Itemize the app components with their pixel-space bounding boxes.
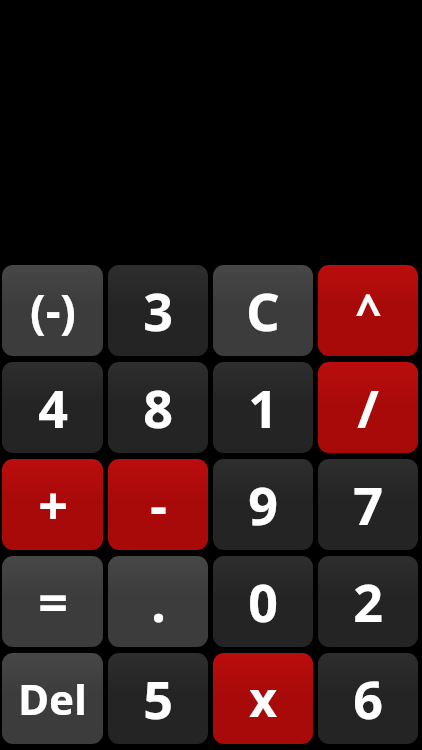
staticText: 9 bbox=[248, 469, 278, 540]
staticText: 1 bbox=[248, 372, 278, 443]
button[interactable]: C bbox=[213, 265, 313, 356]
staticText: = bbox=[38, 566, 68, 637]
staticText: ^ bbox=[355, 279, 382, 342]
button[interactable]: 0 bbox=[213, 556, 313, 647]
button[interactable]: / bbox=[318, 362, 418, 453]
staticText: 4 bbox=[38, 372, 68, 443]
staticText: 0 bbox=[248, 566, 278, 637]
button[interactable]: 9 bbox=[213, 459, 313, 550]
button[interactable]: 1 bbox=[213, 362, 313, 453]
staticText: C bbox=[246, 275, 280, 346]
button[interactable]: ^ bbox=[318, 265, 418, 356]
button[interactable]: 7 bbox=[318, 459, 418, 550]
staticText: - bbox=[150, 469, 167, 540]
staticText: 3 bbox=[143, 275, 173, 346]
button[interactable]: 5 bbox=[108, 653, 208, 744]
button[interactable]: 2 bbox=[318, 556, 418, 647]
button[interactable]: Del bbox=[2, 653, 103, 744]
button[interactable]: 8 bbox=[108, 362, 208, 453]
staticText: x bbox=[249, 666, 277, 731]
button[interactable]: 3 bbox=[108, 265, 208, 356]
staticText: Del bbox=[18, 670, 87, 727]
staticText: + bbox=[38, 469, 68, 540]
staticText: 5 bbox=[143, 663, 173, 734]
staticText: . bbox=[151, 566, 166, 637]
button[interactable]: (-) bbox=[2, 265, 103, 356]
staticText: 8 bbox=[143, 372, 173, 443]
button[interactable]: . bbox=[108, 556, 208, 647]
staticText: / bbox=[357, 372, 379, 443]
staticText: 6 bbox=[353, 663, 383, 734]
staticText: 2 bbox=[353, 566, 383, 637]
button[interactable]: 6 bbox=[318, 653, 418, 744]
button[interactable]: 4 bbox=[2, 362, 103, 453]
button[interactable]: - bbox=[108, 459, 208, 550]
button[interactable]: = bbox=[2, 556, 103, 647]
staticText: 7 bbox=[353, 469, 383, 540]
button[interactable]: x bbox=[213, 653, 313, 744]
button[interactable]: + bbox=[2, 459, 103, 550]
staticText: (-) bbox=[30, 279, 76, 342]
